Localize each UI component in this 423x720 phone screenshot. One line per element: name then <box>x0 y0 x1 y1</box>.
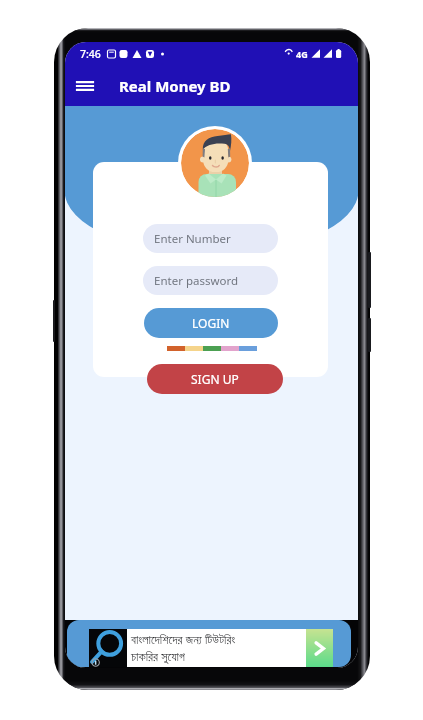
button[interactable]: Open navigation menu <box>71 72 99 100</box>
staticText: Enter Number <box>154 231 231 247</box>
button[interactable]: Open advertisement <box>306 629 333 667</box>
staticText: 7:46 <box>80 47 101 61</box>
staticText: Real Money BD <box>119 76 231 96</box>
staticText: চাকরির সুযোগ <box>131 648 185 665</box>
staticText: Enter password <box>154 273 239 289</box>
button[interactable]: Enter Number <box>143 224 278 253</box>
button[interactable]: বাংলাদেশিদের জন্য টিউটরিং <box>67 620 351 667</box>
staticText: LOGIN <box>192 315 230 331</box>
button[interactable]: LOGIN <box>144 308 278 338</box>
button[interactable]: Enter password <box>143 266 278 295</box>
button[interactable]: SIGN UP <box>147 364 283 394</box>
staticText: SIGN UP <box>191 371 239 387</box>
staticText: 4G <box>296 48 308 60</box>
staticText: বাংলাদেশিদের জন্য টিউটরিং <box>131 631 236 648</box>
